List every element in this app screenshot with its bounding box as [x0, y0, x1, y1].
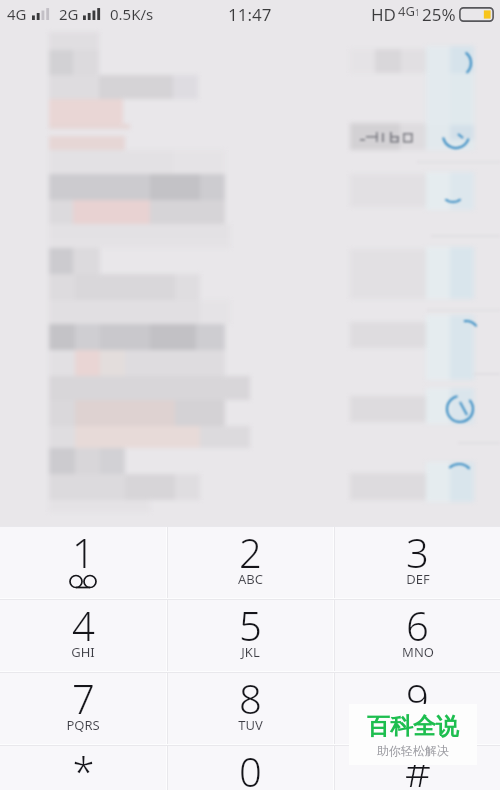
- button[interactable]: 5: [168, 600, 333, 671]
- staticText: 7: [72, 671, 95, 725]
- staticText: 4G: [7, 4, 27, 24]
- staticText: TUV: [238, 716, 263, 734]
- staticText: 8: [239, 671, 262, 725]
- staticText: HD: [371, 3, 397, 26]
- button[interactable]: 1: [0, 527, 166, 598]
- staticText: 4G: [398, 2, 415, 20]
- staticText: WXYZ: [400, 716, 435, 734]
- staticText: 百科全说: [367, 712, 459, 741]
- button[interactable]: 6: [335, 600, 500, 671]
- staticText: #: [405, 744, 431, 790]
- staticText: 1: [72, 525, 95, 579]
- staticText: PQRS: [66, 716, 100, 734]
- staticText: 11:47: [228, 3, 272, 26]
- staticText: 2: [239, 525, 262, 579]
- button[interactable]: 2: [168, 527, 333, 598]
- button[interactable]: #: [335, 746, 500, 790]
- staticText: 25%: [422, 3, 456, 26]
- staticText: 0.5K/s: [110, 4, 154, 24]
- button[interactable]: 8: [168, 673, 333, 744]
- staticText: 3: [406, 525, 429, 579]
- staticText: JKL: [241, 643, 260, 661]
- staticText: 2G: [59, 4, 79, 24]
- staticText: 9: [406, 671, 429, 725]
- staticText: 0: [239, 744, 262, 790]
- staticText: 1: [415, 7, 420, 18]
- button[interactable]: 9: [335, 673, 500, 744]
- button[interactable]: *: [0, 746, 166, 790]
- staticText: DEF: [406, 570, 430, 588]
- staticText: 6: [406, 598, 429, 652]
- button[interactable]: 3: [335, 527, 500, 598]
- staticText: GHI: [71, 643, 95, 661]
- staticText: MNO: [402, 643, 434, 661]
- staticText: 5: [239, 598, 262, 652]
- button[interactable]: 4: [0, 600, 166, 671]
- staticText: 4: [72, 598, 95, 652]
- button[interactable]: 7: [0, 673, 166, 744]
- button[interactable]: 0: [168, 746, 333, 790]
- staticText: *: [72, 744, 95, 790]
- staticText: 助你轻松解决: [377, 743, 449, 758]
- staticText: ABC: [238, 570, 263, 588]
